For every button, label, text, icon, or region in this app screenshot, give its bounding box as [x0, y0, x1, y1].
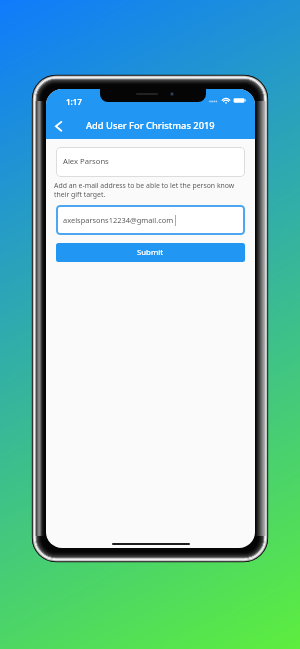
staticText: Submit	[137, 247, 164, 258]
button[interactable]: Alex Parsons	[56, 147, 245, 177]
button[interactable]: Submit	[56, 243, 245, 262]
staticText: Alex Parsons	[63, 156, 109, 166]
button[interactable]: axelsparsons12234@gmail.com	[56, 205, 245, 235]
button[interactable]: Back	[48, 115, 70, 137]
staticText: Add User For Christmas 2019	[86, 119, 215, 132]
staticText: 1:17	[66, 96, 82, 107]
staticText: axelsparsons12234@gmail.com	[63, 215, 174, 225]
staticText: Add an e-mail address to be able to let …	[54, 181, 247, 199]
